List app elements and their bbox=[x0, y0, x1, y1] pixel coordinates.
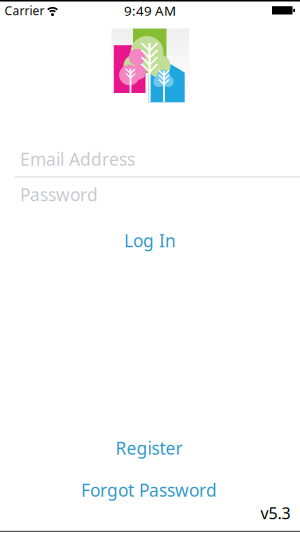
button[interactable]: Forgot Password bbox=[59, 475, 239, 505]
staticText: Forgot Password bbox=[81, 478, 217, 501]
staticText: Log In bbox=[124, 229, 176, 252]
staticText: Password bbox=[20, 183, 98, 206]
button[interactable]: Register bbox=[79, 433, 219, 463]
staticText: v5.3 bbox=[260, 502, 290, 524]
button[interactable]: Password bbox=[0, 178, 300, 210]
staticText: Email Address bbox=[20, 147, 135, 170]
staticText: Register bbox=[115, 436, 182, 459]
staticText: Carrier bbox=[4, 2, 44, 18]
button[interactable]: Email Address bbox=[0, 143, 300, 175]
button[interactable]: Log In bbox=[90, 225, 210, 255]
staticText: 9:49 AM bbox=[124, 2, 176, 19]
